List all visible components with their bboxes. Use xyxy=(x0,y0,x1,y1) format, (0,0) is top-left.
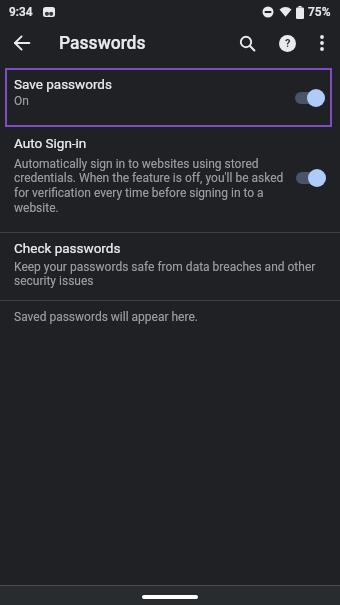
button[interactable]: Auto Sign-in xyxy=(0,135,340,215)
staticText: 9:34 xyxy=(9,5,33,19)
staticText: Check passwords xyxy=(14,240,121,256)
button[interactable]: Save passwords xyxy=(5,68,332,127)
button[interactable] xyxy=(304,24,340,62)
button[interactable] xyxy=(0,24,44,62)
staticText: ? xyxy=(285,37,291,50)
button[interactable] xyxy=(296,169,326,187)
button[interactable]: Check passwords xyxy=(0,233,340,300)
staticText: Saved passwords will appear here. xyxy=(14,310,198,324)
button[interactable] xyxy=(224,24,270,62)
staticText: On xyxy=(14,94,29,108)
staticText: Passwords xyxy=(59,33,224,54)
button[interactable]: ? xyxy=(270,24,304,62)
staticText: Auto Sign-in xyxy=(14,135,87,151)
staticText: Automatically sign in to websites using … xyxy=(14,157,284,215)
staticText: 75% xyxy=(308,5,331,19)
staticText: Keep your passwords safe from data breac… xyxy=(14,260,316,288)
staticText: Save passwords xyxy=(14,76,112,92)
button[interactable] xyxy=(295,89,325,107)
